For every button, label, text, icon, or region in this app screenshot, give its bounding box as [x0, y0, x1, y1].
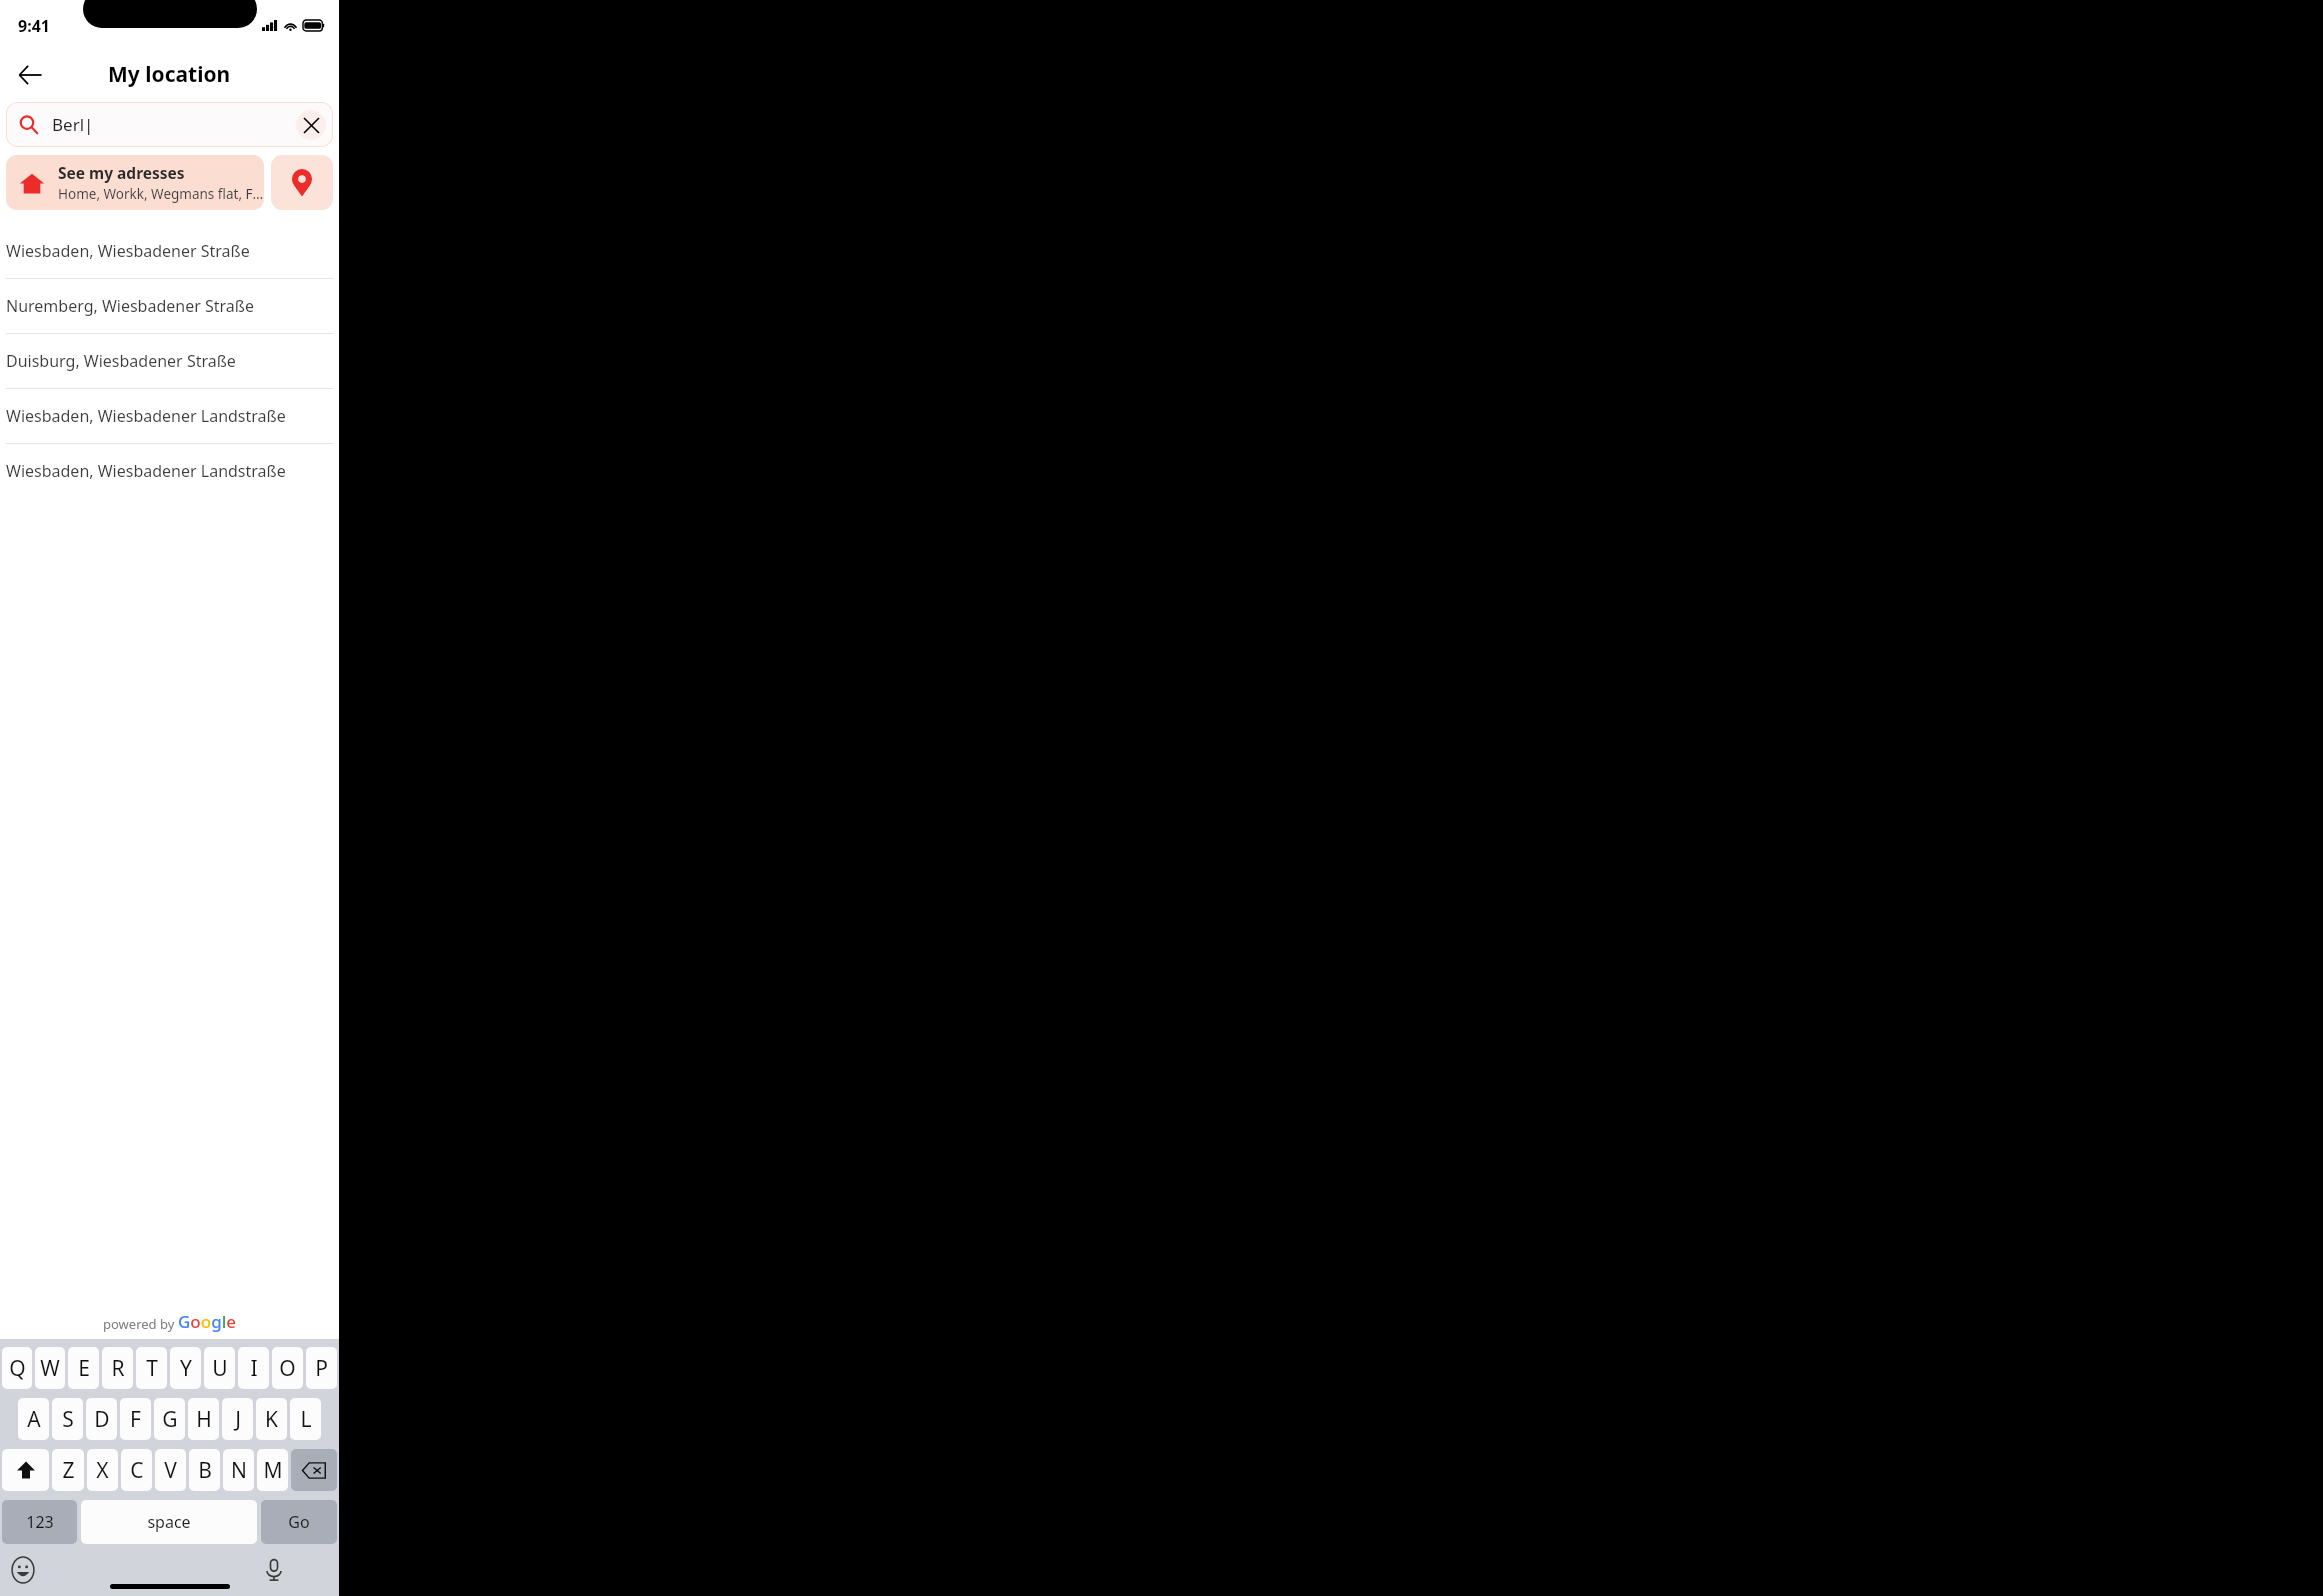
- button[interactable]: A: [18, 1398, 49, 1440]
- button[interactable]: Go: [261, 1500, 337, 1544]
- button[interactable]: 123: [2, 1500, 77, 1544]
- staticText: P: [315, 1354, 328, 1383]
- staticText: J: [235, 1405, 241, 1434]
- staticText: Z: [62, 1456, 75, 1485]
- button[interactable]: M: [257, 1449, 288, 1491]
- button[interactable]: Emoji: [6, 1553, 40, 1587]
- button[interactable]: Berl|: [6, 102, 333, 147]
- staticText: N: [231, 1456, 247, 1485]
- button[interactable]: W: [35, 1347, 65, 1389]
- button[interactable]: H: [188, 1398, 219, 1440]
- button[interactable]: X: [87, 1449, 118, 1491]
- button[interactable]: Wiesbaden, Wiesbadener Landstraße: [0, 444, 339, 498]
- button[interactable]: F: [120, 1398, 151, 1440]
- button[interactable]: Clear search: [296, 110, 326, 140]
- staticText: space: [147, 1511, 191, 1533]
- button[interactable]: V: [155, 1449, 186, 1491]
- staticText: 123: [26, 1511, 54, 1533]
- staticText: O: [279, 1354, 296, 1383]
- button[interactable]: Y: [170, 1347, 201, 1389]
- staticText: X: [96, 1456, 109, 1485]
- button[interactable]: Dictation: [257, 1553, 291, 1587]
- staticText: Wiesbaden, Wiesbadener Straße: [6, 240, 250, 262]
- button[interactable]: L: [290, 1398, 321, 1440]
- staticText: 9:41: [18, 15, 50, 37]
- button[interactable]: T: [136, 1347, 167, 1389]
- button[interactable]: Backspace: [291, 1449, 337, 1491]
- button[interactable]: Z: [52, 1449, 84, 1491]
- staticText: R: [111, 1354, 125, 1383]
- staticText: H: [196, 1405, 212, 1434]
- button[interactable]: Wiesbaden, Wiesbadener Straße: [0, 224, 339, 278]
- staticText: Google: [178, 1310, 237, 1333]
- staticText: S: [62, 1405, 74, 1434]
- button[interactable]: Wiesbaden, Wiesbadener Landstraße: [0, 389, 339, 443]
- button[interactable]: P: [306, 1347, 337, 1389]
- staticText: C: [130, 1456, 144, 1485]
- staticText: I: [250, 1354, 258, 1383]
- button[interactable]: See my adresses: [6, 155, 264, 210]
- staticText: Q: [9, 1354, 26, 1383]
- staticText: E: [78, 1354, 90, 1383]
- staticText: V: [164, 1456, 177, 1485]
- button[interactable]: O: [272, 1347, 303, 1389]
- staticText: M: [263, 1456, 283, 1485]
- staticText: T: [146, 1354, 158, 1383]
- staticText: Go: [288, 1511, 310, 1533]
- staticText: K: [265, 1405, 278, 1434]
- staticText: Berl|: [52, 113, 94, 136]
- staticText: Wiesbaden, Wiesbadener Landstraße: [6, 460, 286, 482]
- staticText: powered by: [103, 1315, 178, 1333]
- button[interactable]: Back: [6, 51, 54, 99]
- button[interactable]: G: [154, 1398, 185, 1440]
- button[interactable]: Nuremberg, Wiesbadener Straße: [0, 279, 339, 333]
- button[interactable]: R: [102, 1347, 133, 1389]
- staticText: Y: [180, 1354, 192, 1383]
- staticText: My location: [108, 60, 231, 89]
- button[interactable]: Duisburg, Wiesbadener Straße: [0, 334, 339, 388]
- button[interactable]: N: [223, 1449, 254, 1491]
- staticText: W: [40, 1354, 60, 1383]
- button[interactable]: S: [52, 1398, 83, 1440]
- button[interactable]: space: [81, 1500, 257, 1544]
- staticText: Wiesbaden, Wiesbadener Landstraße: [6, 405, 286, 427]
- staticText: Nuremberg, Wiesbadener Straße: [6, 295, 254, 317]
- staticText: Duisburg, Wiesbadener Straße: [6, 350, 236, 372]
- button[interactable]: D: [86, 1398, 117, 1440]
- staticText: G: [162, 1405, 178, 1434]
- button[interactable]: J: [222, 1398, 253, 1440]
- staticText: U: [212, 1354, 228, 1383]
- button[interactable]: Shift: [2, 1449, 49, 1491]
- button[interactable]: U: [204, 1347, 235, 1389]
- staticText: See my adresses: [58, 162, 185, 183]
- staticText: Home, Workk, Wegmans flat, Flat 2 ...: [58, 185, 264, 203]
- button[interactable]: E: [68, 1347, 99, 1389]
- button[interactable]: Q: [2, 1347, 32, 1389]
- button[interactable]: C: [121, 1449, 152, 1491]
- staticText: A: [27, 1405, 41, 1434]
- staticText: L: [300, 1405, 312, 1434]
- staticText: B: [198, 1456, 212, 1485]
- staticText: F: [130, 1405, 141, 1434]
- button[interactable]: B: [189, 1449, 220, 1491]
- button[interactable]: K: [256, 1398, 287, 1440]
- button[interactable]: Use current location: [271, 155, 333, 210]
- staticText: D: [94, 1405, 110, 1434]
- button[interactable]: I: [238, 1347, 269, 1389]
